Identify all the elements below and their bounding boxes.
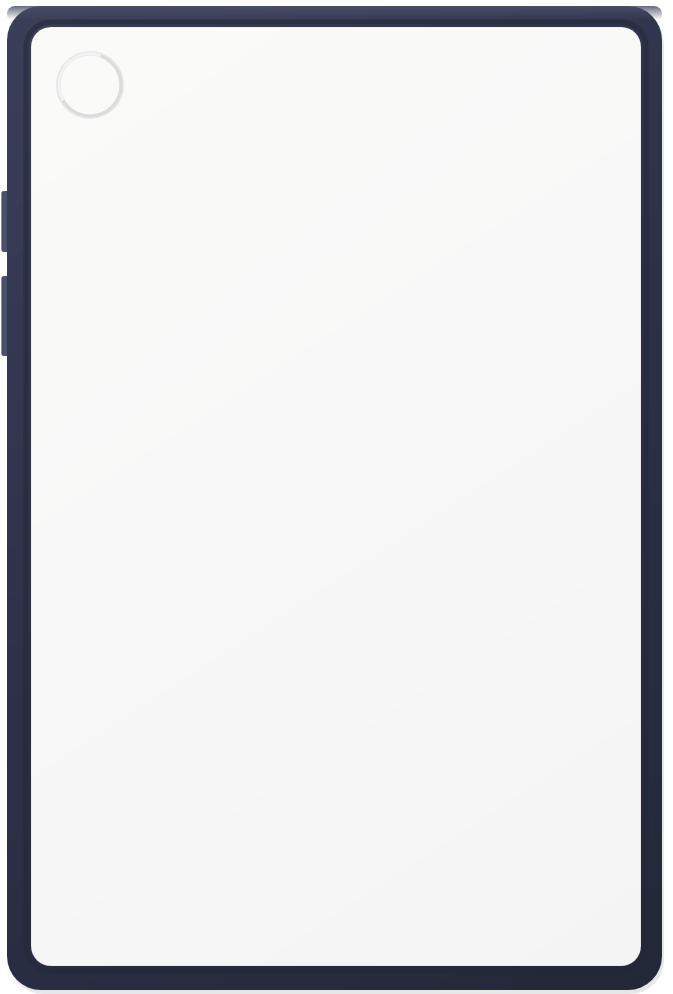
button[interactable]: Navy blue clear-back tablet case, front … [0, 0, 673, 994]
